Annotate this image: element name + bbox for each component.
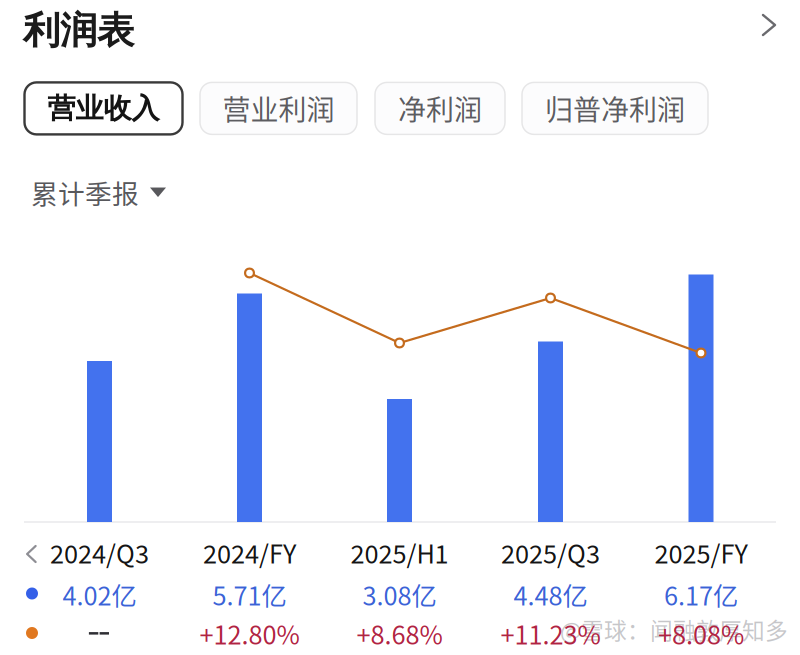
staticText: 2025/Q3 — [501, 534, 600, 571]
staticText: 4.02亿 — [62, 576, 136, 613]
staticText: 营业收入 — [47, 91, 159, 126]
staticText: 2025/H1 — [350, 534, 448, 571]
button[interactable]: 累计季报 — [31, 173, 166, 212]
button[interactable]: 归普净利润 — [522, 82, 708, 134]
staticText: @雪球：闻融敦厚知多 — [560, 613, 788, 646]
button[interactable]: Previous periods — [26, 545, 39, 564]
staticText: 累计季报 — [31, 173, 139, 212]
staticText: 利润表 — [23, 7, 134, 54]
staticText: 3.08亿 — [362, 576, 436, 613]
button[interactable]: 营业利润 — [200, 82, 357, 134]
staticText: 4.48亿 — [513, 576, 587, 613]
staticText: +11.23% — [500, 615, 600, 652]
staticText: +12.80% — [199, 615, 299, 652]
staticText: +8.08% — [658, 615, 744, 652]
staticText: 2024/FY — [203, 534, 296, 571]
staticText: 5.71亿 — [212, 576, 286, 613]
staticText: 营业利润 — [222, 88, 334, 129]
staticText: 2025/FY — [654, 534, 747, 571]
button[interactable]: 净利润 — [375, 82, 505, 134]
staticText: +8.68% — [356, 615, 442, 652]
button[interactable]: 营业收入 — [24, 82, 182, 134]
button[interactable]: More — [759, 11, 781, 40]
staticText: 归普净利润 — [545, 88, 685, 129]
staticText: 净利润 — [398, 88, 482, 129]
staticText: 6.17亿 — [664, 576, 738, 613]
staticText: 2024/Q3 — [50, 534, 149, 571]
